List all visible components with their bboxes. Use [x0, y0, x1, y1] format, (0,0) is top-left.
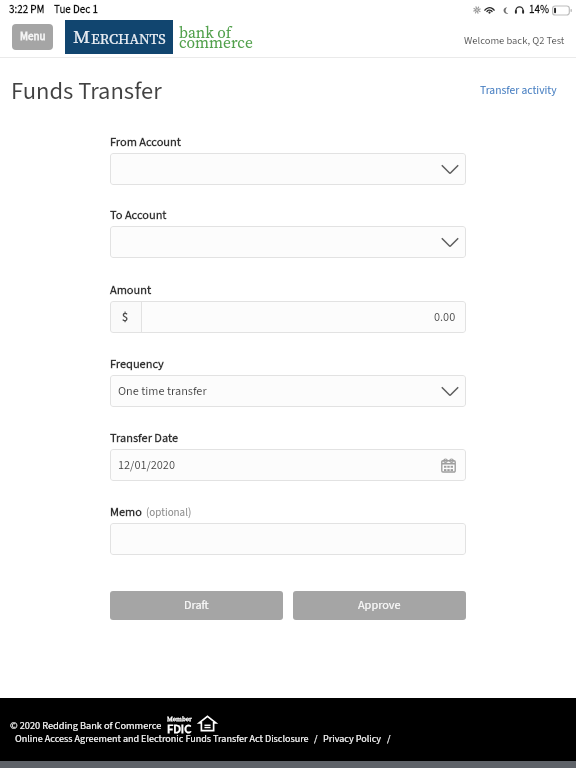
staticText: Memo	[110, 503, 142, 521]
staticText: Privacy Policy	[323, 732, 382, 746]
staticText: Welcome back, Q2 Test	[464, 33, 565, 48]
button[interactable]: Approve	[293, 591, 466, 620]
staticText: Draft	[184, 597, 209, 614]
staticText: Approve	[358, 597, 401, 614]
button[interactable]	[110, 226, 466, 258]
staticText: $	[122, 309, 129, 326]
button[interactable]: One time transfer	[110, 375, 466, 407]
staticText: 12/01/2020	[118, 457, 175, 474]
staticText: Amount	[110, 281, 152, 299]
staticText: One time transfer	[118, 383, 207, 400]
button[interactable]: Transfer activity	[480, 82, 557, 98]
staticText: Menu	[20, 29, 46, 45]
staticText: 0.00	[434, 309, 456, 326]
button[interactable]: Privacy Policy	[323, 732, 382, 746]
staticText: From Account	[110, 133, 181, 151]
staticText: Tue Dec 1	[54, 2, 98, 18]
staticText: bank of	[179, 22, 232, 43]
staticText: Transfer activity	[480, 82, 557, 98]
button[interactable]: Menu	[12, 24, 53, 50]
staticText: ERCHANTS	[91, 29, 166, 49]
button[interactable]: Draft	[110, 591, 283, 620]
button[interactable]	[110, 153, 466, 185]
staticText: Funds Transfer	[11, 74, 162, 109]
staticText: Transfer Date	[110, 429, 179, 447]
staticText: 3:22 PM	[9, 2, 45, 18]
staticText: commerce	[179, 32, 253, 53]
staticText: 14%	[529, 2, 549, 18]
staticText: (optional)	[146, 505, 192, 521]
staticText: © 2020 Redding Bank of Commerce	[10, 718, 162, 733]
staticText: Online Access Agreement and Electronic F…	[15, 732, 309, 746]
button[interactable]: M	[65, 20, 255, 56]
button[interactable]: 12/01/2020	[110, 449, 466, 481]
staticText: Member	[167, 714, 192, 723]
staticText: FDIC	[167, 720, 192, 737]
staticText: M	[73, 23, 91, 49]
button[interactable]	[110, 523, 466, 555]
staticText: To Account	[110, 206, 167, 224]
staticText: /	[387, 732, 391, 746]
button[interactable]: $	[110, 301, 466, 333]
other: Choose date	[441, 458, 456, 473]
staticText: /	[314, 732, 318, 746]
button[interactable]: Online Access Agreement and Electronic F…	[15, 732, 309, 746]
staticText: Frequency	[110, 355, 164, 373]
